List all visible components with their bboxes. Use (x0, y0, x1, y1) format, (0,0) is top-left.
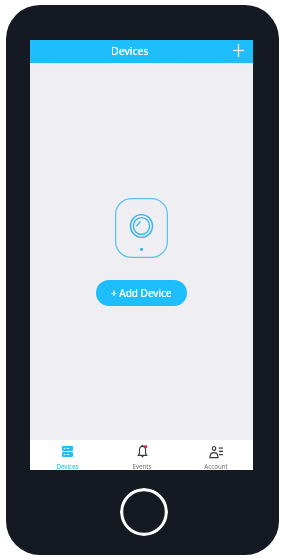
staticText: Events (132, 462, 152, 470)
staticText: Account (204, 462, 228, 470)
staticText: Devices (56, 462, 79, 470)
button[interactable]: Devices (30, 440, 105, 470)
staticText: + Add Device (111, 286, 172, 300)
staticText: Devices (111, 44, 149, 58)
button[interactable]: Home (120, 488, 168, 536)
button[interactable]: Events (105, 440, 179, 470)
button[interactable]: Account (179, 440, 253, 470)
button[interactable]: + Add Device (96, 280, 187, 306)
button[interactable]: Add device (224, 40, 253, 63)
